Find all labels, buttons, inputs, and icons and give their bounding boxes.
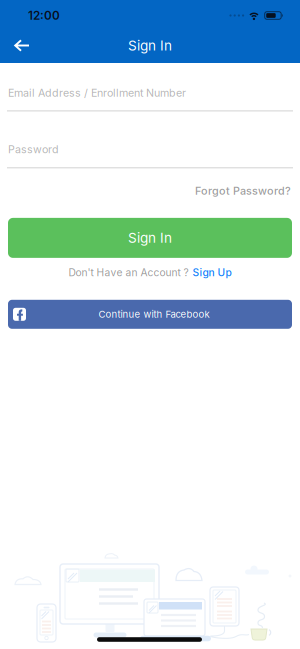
staticText: Sign Up [192, 266, 231, 279]
button[interactable]: Sign In [8, 218, 292, 258]
staticText: Password [8, 143, 59, 156]
staticText: 12:00 [28, 8, 60, 23]
button[interactable]: Sign Up [192, 266, 231, 279]
staticText: Sign In [128, 230, 172, 246]
staticText: Don't Have an Account ? [68, 266, 188, 279]
button[interactable]: Forgot Password? [195, 184, 291, 197]
button[interactable]: Continue with Facebook [8, 300, 292, 329]
staticText: Sign In [128, 37, 172, 54]
staticText: Email Address / Enrollment Number [8, 86, 186, 99]
staticText: Continue with Facebook [98, 308, 209, 320]
button[interactable]: Back [0, 29, 40, 61]
staticText: Forgot Password? [195, 184, 291, 197]
